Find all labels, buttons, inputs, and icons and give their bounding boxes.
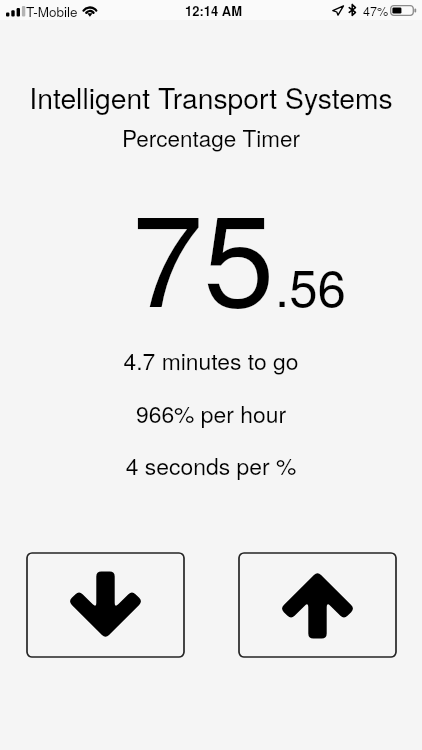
staticText: Percentage Timer	[0, 121, 422, 153]
staticText: T-Mobile	[26, 2, 78, 21]
button[interactable]: Increase timer	[238, 552, 397, 658]
staticText: 47%	[363, 2, 389, 20]
staticText: Intelligent Transport Systems	[0, 77, 422, 118]
staticText: 966% per hour	[0, 397, 422, 430]
staticText: 4 seconds per %	[0, 449, 422, 482]
staticText: 75	[132, 160, 275, 343]
staticText: .56	[275, 248, 346, 321]
staticText: 12:14 AM	[185, 1, 243, 20]
button[interactable]: Decrease timer	[26, 552, 185, 658]
staticText: 4.7 minutes to go	[0, 344, 422, 377]
